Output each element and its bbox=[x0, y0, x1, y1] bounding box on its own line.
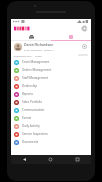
button[interactable]: Sales Portfolio bbox=[11, 98, 91, 106]
staticText: Orders Management bbox=[22, 68, 52, 72]
staticText: PERFORMANCE bbox=[14, 54, 32, 57]
staticText: Events bbox=[22, 116, 32, 120]
button[interactable]: Recent apps bbox=[64, 155, 91, 164]
button[interactable]: Events bbox=[11, 114, 91, 122]
button[interactable]: Dashboard tab bbox=[11, 33, 51, 40]
button[interactable]: Modules tab bbox=[51, 33, 91, 40]
staticText: Sales Portfolio bbox=[22, 100, 43, 104]
button[interactable]: Settings bbox=[81, 43, 88, 50]
button[interactable]: Daniel Richardson bbox=[11, 41, 91, 52]
button[interactable]: Daily Activity bbox=[11, 122, 91, 130]
staticText: Daily Activity bbox=[22, 124, 40, 128]
button[interactable]: Communication bbox=[11, 106, 91, 114]
staticText: Dealership bbox=[22, 84, 38, 88]
staticText: Service Inspection bbox=[22, 132, 48, 136]
button[interactable]: Team Management bbox=[11, 58, 91, 66]
button[interactable]: Reports bbox=[11, 90, 91, 98]
button[interactable]: Service Inspection bbox=[11, 130, 91, 138]
staticText: Staff Management bbox=[22, 76, 49, 80]
button[interactable]: Back bbox=[11, 155, 37, 164]
button[interactable]: Staff Management bbox=[11, 74, 91, 82]
staticText: Sales Executive · Region 4 bbox=[24, 48, 54, 51]
staticText: Communication bbox=[22, 108, 45, 112]
staticText: Documents bbox=[22, 140, 39, 144]
staticText: Daniel Richardson bbox=[24, 42, 54, 47]
staticText: Reports bbox=[22, 92, 33, 96]
button[interactable]: Home bbox=[37, 155, 64, 164]
button[interactable]: Orders Management bbox=[11, 66, 91, 74]
staticText: TASKS bbox=[35, 54, 42, 57]
button[interactable]: Edit profile bbox=[81, 25, 88, 32]
button[interactable]: Documents bbox=[11, 138, 91, 146]
button[interactable]: Dealership bbox=[11, 82, 91, 90]
staticText: Team Management bbox=[22, 60, 50, 64]
